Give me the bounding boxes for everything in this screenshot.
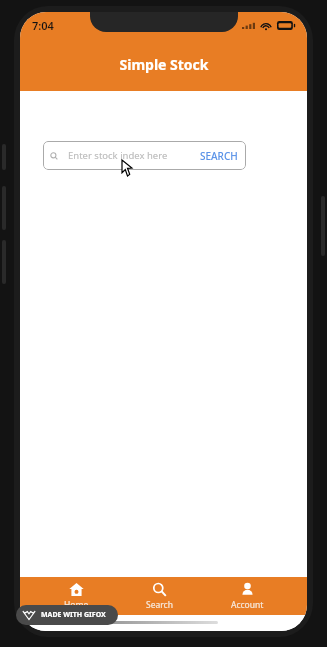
- staticText: Home: [64, 599, 89, 611]
- staticText: Search: [146, 599, 173, 611]
- button[interactable]: SEARCH: [199, 147, 239, 165]
- other: Account: [240, 582, 255, 597]
- button[interactable]: Home: [50, 579, 103, 614]
- staticText: Simple Stock: [119, 55, 209, 74]
- button[interactable]: Search: [132, 579, 187, 614]
- staticText: Account: [231, 599, 264, 611]
- button[interactable]: Account: [217, 579, 278, 614]
- staticText: 7:04: [32, 18, 54, 33]
- staticText: MADE WITH GIFOX: [41, 610, 106, 620]
- staticText: Enter stock index here: [68, 149, 168, 162]
- other: Home: [69, 582, 84, 597]
- staticText: SEARCH: [200, 149, 238, 163]
- button[interactable]: Enter stock index here: [43, 141, 246, 170]
- other: Search: [152, 582, 167, 597]
